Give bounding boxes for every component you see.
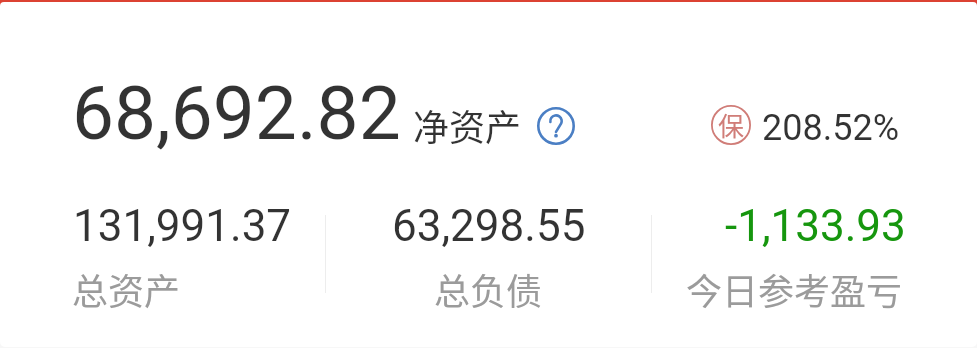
staticText: 保 — [718, 106, 745, 144]
staticText: 总负债 — [434, 263, 543, 315]
staticText: 68,692.82 — [72, 70, 401, 158]
staticText: -1,133.93 — [725, 200, 906, 252]
button[interactable]: 63,298.55 — [326, 195, 651, 320]
staticText: 今日参考盈亏 — [686, 263, 903, 315]
button[interactable]: Insurance coverage — [700, 92, 915, 160]
button[interactable]: 68,692.82 — [60, 57, 580, 162]
other: Insurance coverage — [711, 105, 751, 145]
button[interactable]: 131,991.37 — [0, 195, 325, 320]
staticText: 63,298.55 — [392, 200, 586, 252]
button[interactable]: -1,133.93 — [652, 195, 977, 320]
staticText: 131,991.37 — [73, 200, 292, 252]
button[interactable]: What is net assets — [537, 107, 575, 145]
staticText: 208.52% — [762, 107, 900, 149]
staticText: 总资产 — [72, 263, 181, 315]
staticText: 净资产 — [413, 99, 522, 151]
